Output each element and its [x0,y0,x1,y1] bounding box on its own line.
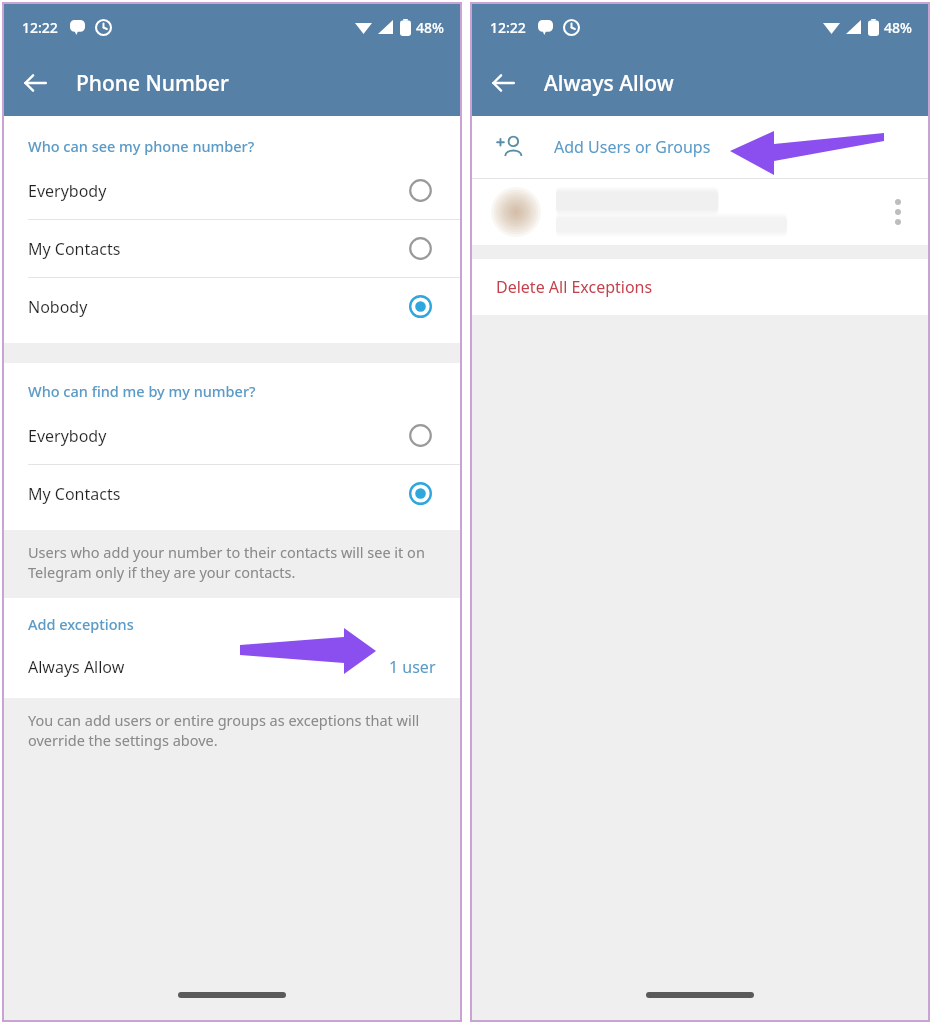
staticText: Always Allow [28,656,125,678]
button[interactable]: Back [4,52,66,114]
staticText: Users who add your number to their conta… [28,542,432,582]
staticText: 48% [416,18,444,37]
button[interactable]: Always Allow [4,640,460,694]
button[interactable]: Everybody [4,407,460,464]
staticText: Everybody [28,180,107,202]
button[interactable]: Nobody [4,278,460,335]
button[interactable]: My Contacts [4,465,460,522]
button[interactable]: Add Users or Groups [472,116,928,178]
button[interactable]: Delete All Exceptions [472,259,928,315]
staticText: Add Users or Groups [554,136,711,158]
staticText: Everybody [28,425,107,447]
staticText: You can add users or entire groups as ex… [28,710,432,750]
staticText: My Contacts [28,483,121,505]
button[interactable]: My Contacts [4,220,460,277]
staticText: Who can see my phone number? [28,136,255,156]
staticText: My Contacts [28,238,121,260]
staticText: 48% [884,18,912,37]
staticText: Delete All Exceptions [496,276,653,298]
staticText: Add exceptions [28,614,134,634]
staticText: Always Allow [544,69,674,98]
button[interactable]: Back [472,52,534,114]
staticText: Who can find me by my number? [28,381,256,401]
button[interactable]: More options [472,179,928,245]
button[interactable]: More options [868,179,928,245]
button[interactable]: Everybody [4,162,460,219]
staticText: Nobody [28,296,88,318]
staticText: 1 user [389,656,436,678]
staticText: 12:22 [490,18,526,37]
staticText: 12:22 [22,18,58,37]
staticText: Phone Number [76,69,229,98]
